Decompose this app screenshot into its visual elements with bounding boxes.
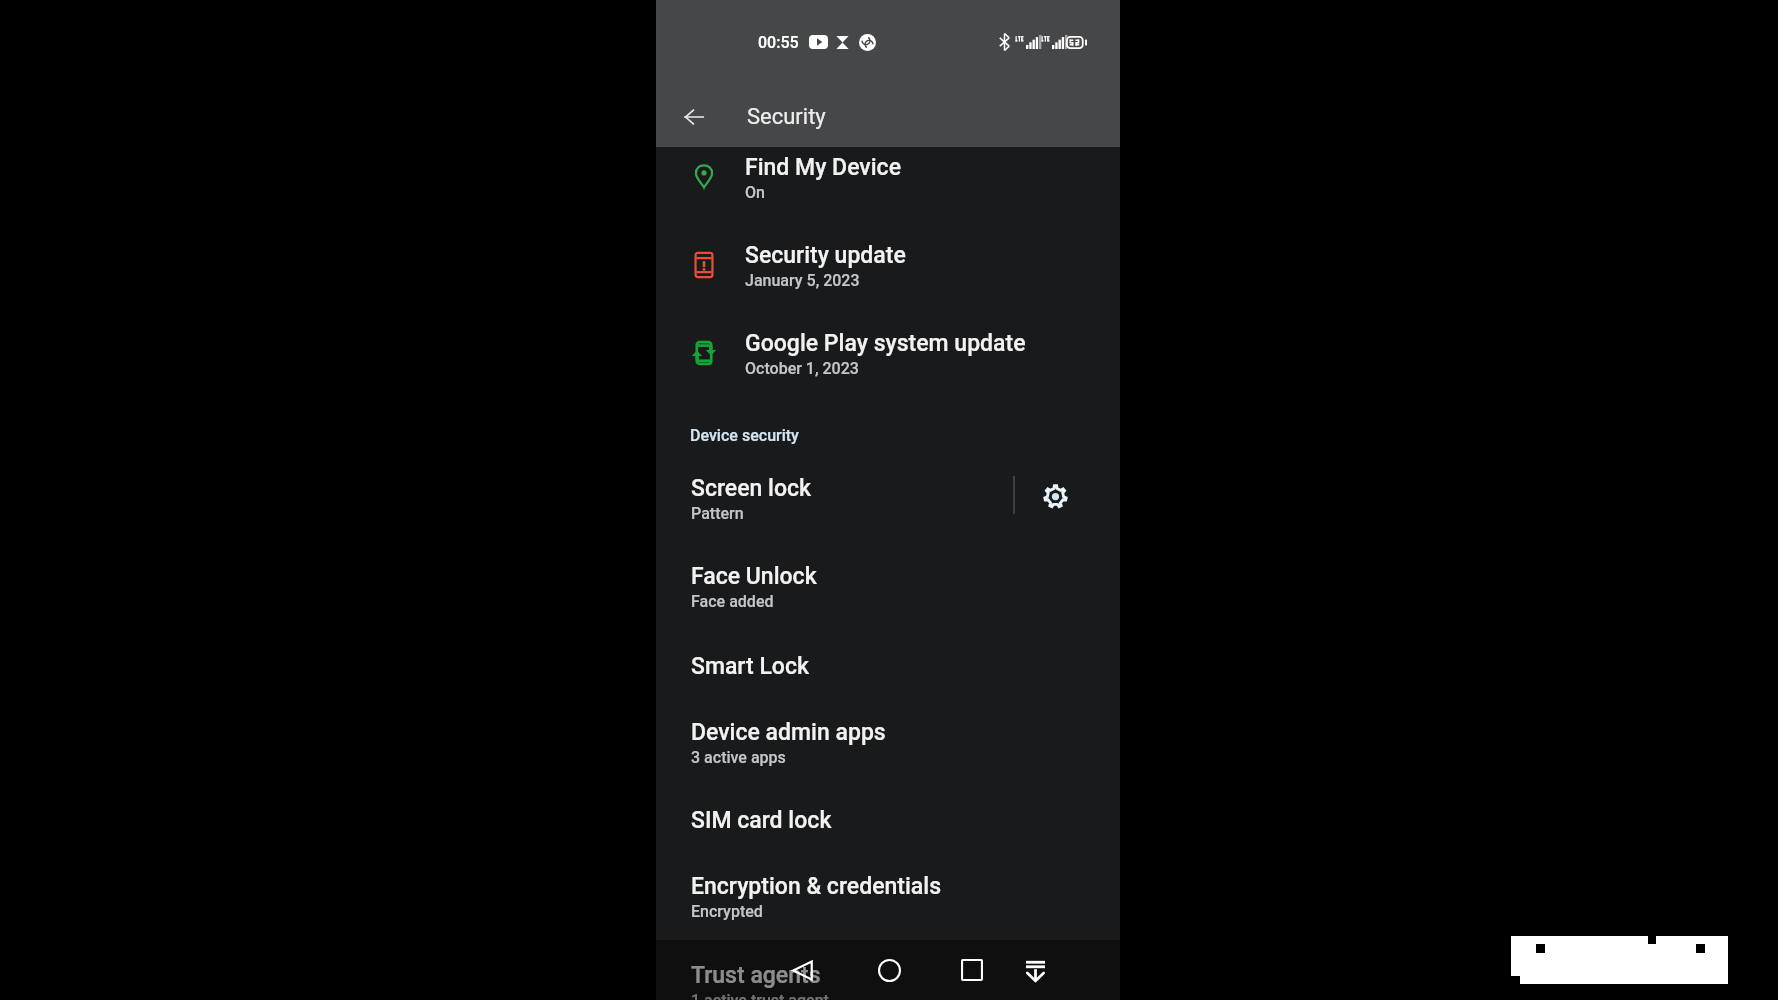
staticText: 00:55 (758, 33, 799, 52)
button[interactable]: Find My Device (656, 136, 1120, 224)
staticText: 1 active trust agent (691, 991, 829, 1000)
button[interactable]: Recent apps (950, 948, 994, 992)
button[interactable]: Encryption & credentials (656, 855, 1120, 943)
button[interactable]: SIM card lock (656, 789, 1120, 855)
button[interactable]: Face Unlock (656, 545, 1120, 633)
staticText: Encryption & credentials (691, 873, 942, 900)
staticText: 3 active apps (691, 748, 786, 767)
button[interactable]: Smart Lock (656, 635, 1120, 701)
button[interactable]: Home (867, 948, 911, 992)
button[interactable]: Hide keyboard (1013, 948, 1057, 992)
staticText: Pattern (691, 504, 744, 523)
button[interactable]: Device admin apps (656, 701, 1120, 789)
button[interactable]: Trust agents (656, 944, 1120, 1000)
staticText: Security update (745, 242, 906, 269)
staticText: Encrypted (691, 902, 763, 921)
staticText: January 5, 2023 (745, 271, 860, 290)
staticText: Trust agents (691, 962, 821, 989)
button[interactable]: Screen lock settings (1022, 457, 1120, 545)
staticText: Face Unlock (691, 563, 817, 590)
staticText: October 1, 2023 (745, 359, 859, 378)
button[interactable]: Back (780, 948, 824, 992)
button[interactable]: Security update (656, 224, 1120, 312)
staticText: Device admin apps (691, 719, 886, 746)
staticText: Google Play system update (745, 330, 1026, 357)
button[interactable]: Back (673, 96, 715, 138)
staticText: Smart Lock (691, 653, 810, 680)
staticText: Device security (690, 426, 799, 445)
button[interactable]: Google Play system update (656, 312, 1120, 400)
staticText: Security (747, 104, 826, 130)
staticText: On (745, 183, 765, 202)
staticText: Screen lock (691, 475, 812, 502)
staticText: SIM card lock (691, 807, 832, 834)
button[interactable]: Screen lock (656, 457, 1011, 545)
staticText: Face added (691, 592, 774, 611)
staticText: Find My Device (745, 154, 901, 181)
